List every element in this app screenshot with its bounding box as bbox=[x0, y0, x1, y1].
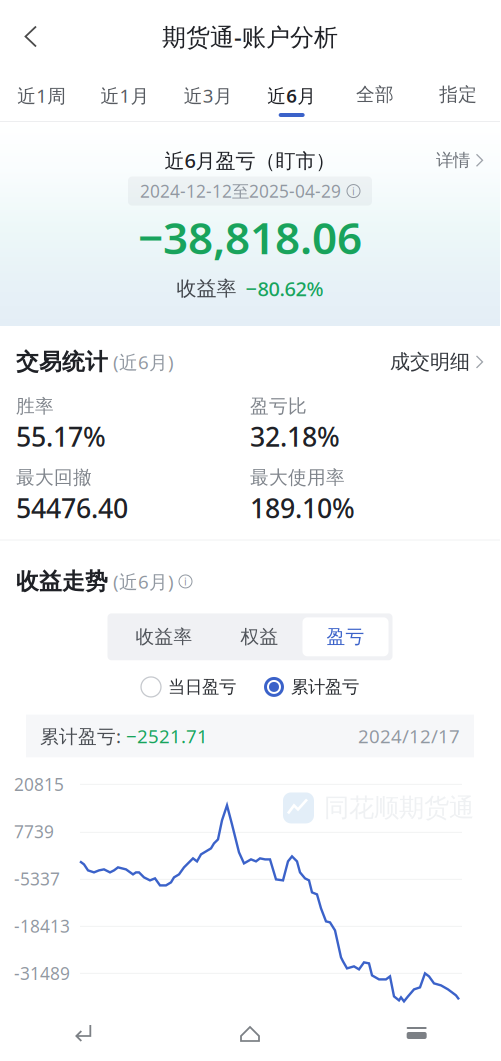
staticText: 成交明细 bbox=[390, 350, 470, 374]
button[interactable]: 累计盈亏 bbox=[264, 676, 359, 698]
staticText: 权益 bbox=[240, 625, 278, 648]
staticText: i bbox=[184, 574, 187, 589]
staticText: 最大回撤 bbox=[16, 466, 92, 489]
staticText: 近3月 bbox=[184, 83, 233, 108]
staticText: 54476.40 bbox=[16, 490, 128, 525]
staticText: 盈亏 bbox=[326, 625, 364, 648]
staticText: 2024-12-12至2025-04-29 bbox=[140, 180, 341, 203]
button[interactable]: 近1月 bbox=[83, 73, 167, 122]
staticText: 期货通-账户分析 bbox=[162, 21, 338, 52]
staticText: 交易统计 bbox=[16, 348, 108, 376]
button[interactable]: 指定 bbox=[417, 73, 500, 122]
staticText: 近6月盈亏（盯市） bbox=[164, 147, 335, 174]
button[interactable]: 近6月 bbox=[250, 73, 333, 122]
button[interactable]: 当日盈亏 bbox=[141, 676, 236, 698]
staticText: 当日盈亏 bbox=[168, 676, 236, 698]
staticText: (近6月) bbox=[108, 349, 174, 374]
staticText: 收益走势 bbox=[16, 567, 108, 595]
button[interactable]: 近1周 bbox=[0, 73, 83, 122]
staticText: -18413 bbox=[14, 915, 70, 938]
staticText: −38,818.06 bbox=[138, 208, 362, 266]
staticText: 近1月 bbox=[100, 83, 149, 108]
button[interactable]: 盈亏 bbox=[302, 617, 388, 656]
staticText: 近6月 bbox=[267, 83, 316, 108]
staticText: 同花顺期货通 bbox=[324, 792, 474, 823]
button[interactable]: 收益率 bbox=[111, 617, 216, 656]
staticText: 胜率 bbox=[16, 395, 54, 418]
button[interactable]: 近3月 bbox=[167, 73, 250, 122]
button[interactable]: Back bbox=[0, 1023, 167, 1043]
staticText: 189.10% bbox=[250, 490, 355, 525]
button[interactable]: 详情 bbox=[436, 150, 484, 171]
button[interactable]: 全部 bbox=[333, 73, 417, 122]
staticText: -31489 bbox=[14, 962, 70, 985]
staticText: 收益率 bbox=[176, 276, 236, 301]
staticText: 55.17% bbox=[16, 419, 106, 454]
staticText: 详情 bbox=[436, 150, 470, 171]
staticText: −2521.71 bbox=[126, 724, 208, 748]
staticText: 2024/12/17 bbox=[358, 724, 460, 748]
staticText: 20815 bbox=[14, 773, 64, 796]
staticText: 累计盈亏: bbox=[40, 724, 126, 748]
button[interactable]: 权益 bbox=[216, 617, 302, 656]
button[interactable]: Recent apps bbox=[333, 1026, 500, 1040]
staticText: i bbox=[352, 184, 355, 198]
staticText: −80.62% bbox=[245, 275, 323, 302]
button[interactable]: Back bbox=[8, 13, 54, 59]
staticText: 7739 bbox=[14, 820, 54, 843]
staticText: 盈亏比 bbox=[250, 395, 307, 418]
staticText: 近1周 bbox=[17, 83, 66, 108]
staticText: -5337 bbox=[14, 867, 60, 890]
staticText: (近6月) bbox=[108, 569, 179, 594]
staticText: 32.18% bbox=[250, 419, 340, 454]
button[interactable]: Home bbox=[167, 1023, 333, 1043]
staticText: 指定 bbox=[439, 83, 477, 106]
button[interactable]: 成交明细 bbox=[390, 350, 484, 374]
staticText: 收益率 bbox=[135, 625, 192, 648]
staticText: 累计盈亏 bbox=[291, 676, 359, 698]
staticText: 最大使用率 bbox=[250, 466, 345, 489]
staticText: 全部 bbox=[356, 83, 394, 106]
